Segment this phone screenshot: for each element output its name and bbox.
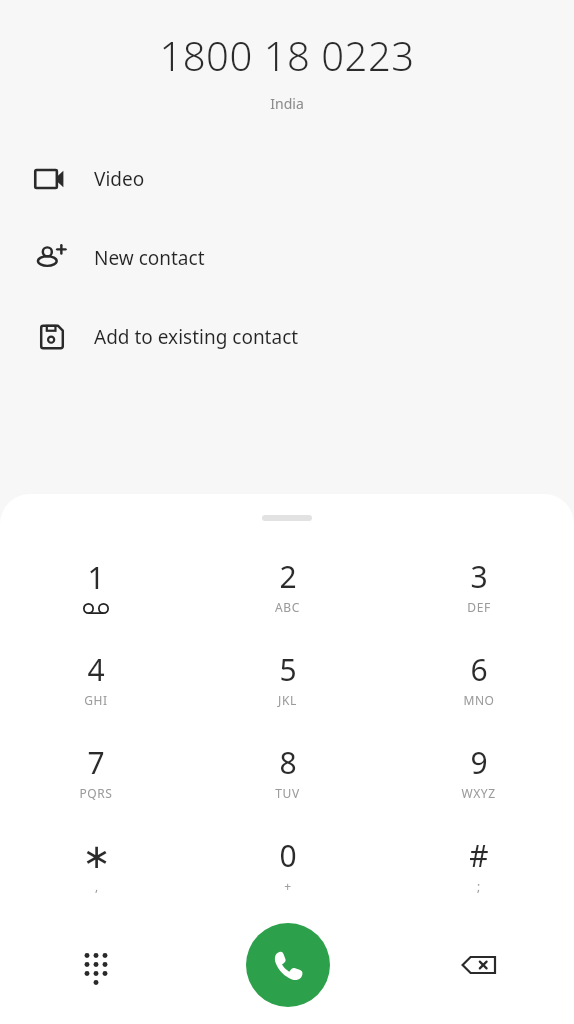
staticText: Video [94, 166, 145, 192]
staticText: # [469, 835, 489, 876]
staticText: 5 [279, 649, 297, 690]
staticText: ABC [275, 599, 300, 615]
staticText: New contact [94, 245, 205, 271]
staticText: TUV [275, 785, 300, 801]
staticText: GHI [84, 692, 108, 708]
staticText: 8 [279, 742, 297, 783]
staticText: 0 [279, 835, 297, 876]
staticText: + [284, 878, 292, 894]
button[interactable]: Video [0, 139, 574, 218]
staticText: WXYZ [461, 785, 496, 801]
button[interactable]: ∗ [0, 818, 192, 911]
button[interactable]: 8 [192, 725, 383, 818]
button[interactable]: Call [246, 923, 330, 1007]
button[interactable]: New contact [0, 218, 574, 297]
staticText: 7 [87, 742, 105, 783]
staticText: ; [477, 878, 481, 894]
staticText: 1800 18 0223 [0, 28, 574, 82]
staticText: DEF [467, 599, 491, 615]
staticText: MNO [463, 692, 495, 708]
staticText: 6 [470, 649, 488, 690]
staticText: ∗ [82, 836, 111, 876]
button[interactable]: Add to existing contact [0, 297, 574, 376]
staticText: 9 [470, 742, 488, 783]
button[interactable]: 3 [383, 539, 574, 632]
staticText: 2 [279, 556, 297, 597]
staticText: , [95, 878, 99, 894]
button[interactable]: # [383, 818, 574, 911]
button[interactable]: 9 [383, 725, 574, 818]
button[interactable]: 4 [0, 632, 192, 725]
button[interactable]: Backspace [383, 917, 574, 1013]
button[interactable]: 5 [192, 632, 383, 725]
button[interactable]: Dialpad [0, 917, 192, 1013]
button[interactable]: 0 [192, 818, 383, 911]
staticText: 3 [470, 556, 488, 597]
button[interactable]: 2 [192, 539, 383, 632]
button[interactable]: 7 [0, 725, 192, 818]
staticText: JKL [278, 692, 297, 708]
staticText: 4 [87, 649, 105, 690]
button[interactable]: 1 [0, 539, 192, 632]
staticText: PQRS [79, 785, 113, 801]
staticText: India [0, 94, 574, 113]
staticText: Add to existing contact [94, 324, 299, 350]
staticText: 1 [87, 557, 105, 598]
button[interactable]: 6 [383, 632, 574, 725]
